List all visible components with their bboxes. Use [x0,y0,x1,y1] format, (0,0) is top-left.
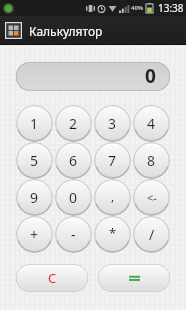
button[interactable]: 8 [133,142,170,179]
staticText: 3 [108,114,117,133]
button[interactable]: 5 [16,142,53,179]
staticText: 0 [145,63,156,89]
button[interactable]: 2 [55,105,92,142]
staticText: 1 [30,114,39,133]
staticText: 4 [147,114,156,133]
staticText: 2 [69,114,78,133]
staticText: 40% [131,4,144,12]
button[interactable]: * [94,216,131,253]
staticText: Калькулятор [29,23,103,39]
button[interactable]: 4 [133,105,170,142]
staticText: 13:38 [158,1,184,15]
button[interactable]: 0 [55,179,92,216]
button[interactable]: , [94,179,131,216]
button[interactable]: C [16,264,88,292]
staticText: 0 [69,188,78,207]
staticText: 9 [30,188,39,207]
button[interactable]: 3 [94,105,131,142]
button[interactable] [98,264,170,292]
button[interactable]: 7 [94,142,131,179]
staticText: C [48,269,57,287]
staticText: , [111,188,115,204]
other: Calculator icon [5,22,22,39]
staticText: 6 [69,151,78,170]
button[interactable]: <- [133,179,170,216]
button[interactable]: 1 [16,105,53,142]
staticText: - [71,225,76,244]
button[interactable]: / [133,216,170,253]
staticText: / [149,225,155,244]
button[interactable]: - [55,216,92,253]
button[interactable]: 9 [16,179,53,216]
staticText: + [30,225,39,244]
staticText: <- [147,190,157,205]
button[interactable]: 6 [55,142,92,179]
button[interactable]: + [16,216,53,253]
staticText: 7 [108,151,117,170]
staticText: 8 [147,151,156,170]
staticText: 5 [30,151,39,170]
staticText: * [109,224,117,242]
